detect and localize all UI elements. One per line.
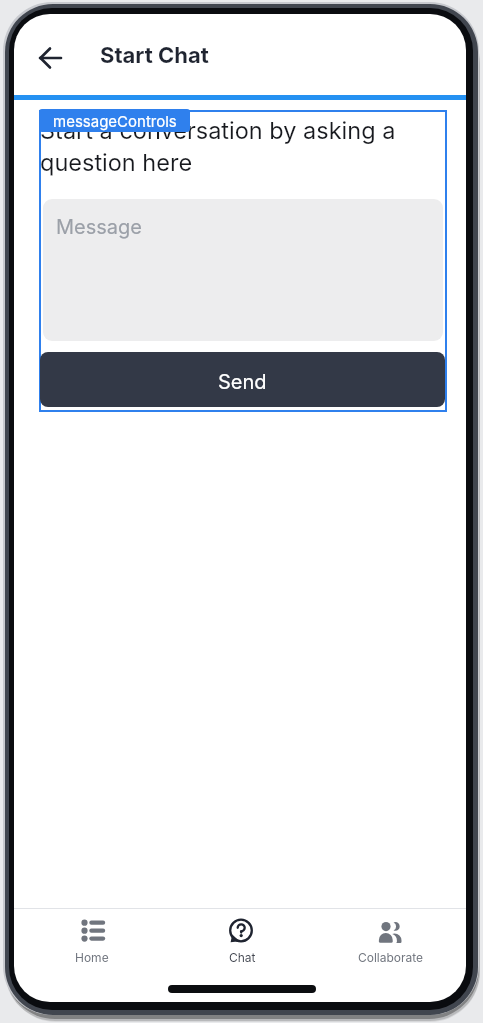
button[interactable]: Message (43, 199, 443, 341)
staticText: Collaborate (358, 950, 424, 965)
staticText: Message (56, 215, 142, 239)
button[interactable]: Send (40, 352, 445, 407)
staticText: Home (75, 950, 109, 965)
staticText: Start Chat (100, 42, 209, 69)
staticText: Chat (229, 950, 256, 965)
staticText: Start a conversation by asking a questio… (40, 116, 396, 176)
staticText: Send (218, 370, 267, 394)
button[interactable]: Home (32, 910, 152, 984)
staticText: messageControls (53, 112, 177, 130)
button[interactable]: Collaborate (331, 910, 451, 984)
button[interactable]: Chat (182, 910, 302, 984)
button[interactable] (32, 40, 68, 76)
